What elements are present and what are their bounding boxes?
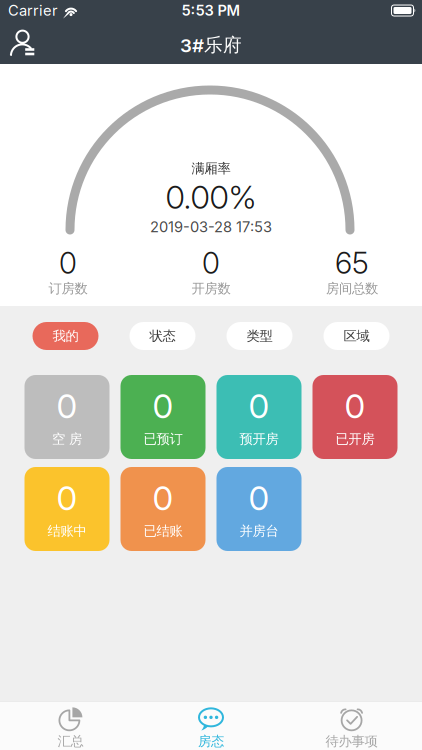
staticText: 0 xyxy=(152,386,173,426)
staticText: 3#乐府 xyxy=(180,33,242,56)
staticText: 0 xyxy=(59,246,77,280)
button[interactable]: 0 xyxy=(120,375,205,459)
staticText: 订房数 xyxy=(48,280,87,297)
button[interactable]: 账户 xyxy=(10,30,36,57)
staticText: 空 房 xyxy=(52,431,82,447)
staticText: 0 xyxy=(56,386,77,426)
staticText: 0 xyxy=(248,386,269,426)
staticText: Carrier xyxy=(8,2,58,19)
button[interactable]: 汇总 xyxy=(0,702,141,750)
button[interactable]: 类型 xyxy=(226,322,292,350)
button[interactable]: 区域 xyxy=(323,322,389,350)
staticText: 类型 xyxy=(246,328,272,344)
button[interactable]: 0 xyxy=(312,375,397,459)
staticText: 我的 xyxy=(52,328,78,344)
staticText: 已结账 xyxy=(143,523,182,539)
staticText: 已开房 xyxy=(335,431,374,447)
staticText: 并房台 xyxy=(239,523,278,539)
staticText: 开房数 xyxy=(191,280,230,297)
staticText: 预开房 xyxy=(239,431,278,447)
button[interactable]: 0 xyxy=(24,467,109,551)
staticText: 65 xyxy=(335,246,369,280)
button[interactable]: 状态 xyxy=(129,322,195,350)
staticText: 待办事项 xyxy=(326,733,378,750)
staticText: 区域 xyxy=(343,328,369,344)
button[interactable]: 0 xyxy=(216,375,301,459)
button[interactable]: 0 xyxy=(216,467,301,551)
staticText: 满厢率 xyxy=(191,160,230,177)
staticText: 0 xyxy=(248,478,269,518)
staticText: 0 xyxy=(202,246,220,280)
button[interactable]: 房态 xyxy=(141,702,281,750)
staticText: 房态 xyxy=(198,733,224,750)
staticText: 结账中 xyxy=(47,523,86,539)
staticText: 5:53 PM xyxy=(181,2,240,19)
staticText: 0 xyxy=(152,478,173,518)
staticText: 状态 xyxy=(149,328,175,344)
staticText: 0 xyxy=(344,386,365,426)
staticText: 已预订 xyxy=(143,431,182,447)
staticText: 2019-03-28 17:53 xyxy=(150,218,272,236)
staticText: 汇总 xyxy=(57,733,83,750)
button[interactable]: 0 xyxy=(120,467,205,551)
button[interactable]: 待办事项 xyxy=(281,702,422,750)
staticText: 房间总数 xyxy=(326,280,378,297)
button[interactable]: 0 xyxy=(24,375,109,459)
staticText: 0.00% xyxy=(165,178,256,216)
staticText: 0 xyxy=(56,478,77,518)
button[interactable]: 我的 xyxy=(32,322,98,350)
